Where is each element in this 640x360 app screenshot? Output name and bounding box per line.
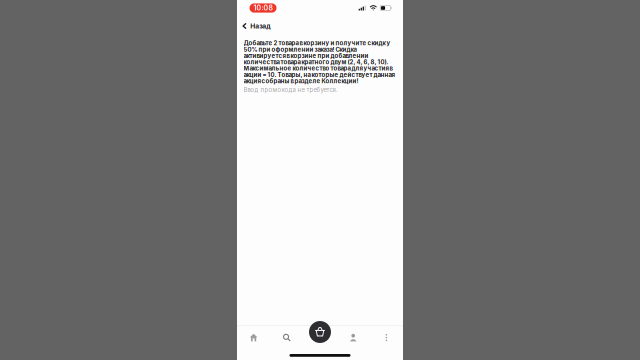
button[interactable]: Назад <box>237 16 279 36</box>
button[interactable]: Главная <box>237 326 270 350</box>
button[interactable]: Ещё <box>370 326 403 350</box>
staticText: 10:08 <box>253 4 272 12</box>
button[interactable]: Поиск <box>270 326 303 350</box>
staticText: Ввод промокода не требуется. <box>243 87 337 93</box>
staticText: Назад <box>250 22 270 30</box>
staticText: Добавьте 2 товара в корзину и получите с… <box>243 40 394 84</box>
button[interactable]: Корзина <box>307 319 333 345</box>
button[interactable]: Профиль <box>337 326 370 350</box>
